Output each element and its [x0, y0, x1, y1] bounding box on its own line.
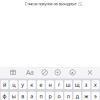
button[interactable]: р: [46, 92, 54, 100]
button[interactable]: л: [64, 92, 72, 100]
button[interactable]: о: [55, 92, 63, 100]
button[interactable]: н: [46, 80, 54, 89]
staticText: з: [85, 81, 88, 88]
staticText: д: [76, 93, 79, 100]
staticText: ц: [12, 81, 15, 88]
staticText: е: [39, 81, 42, 88]
button[interactable]: д: [73, 92, 81, 100]
button[interactable]: ц: [10, 80, 17, 89]
staticText: г: [58, 81, 60, 88]
staticText: Aa: [26, 68, 34, 77]
staticText: э: [94, 93, 97, 100]
button[interactable]: ф: [1, 92, 8, 100]
button[interactable]: Hide keyboard: [86, 68, 94, 77]
button[interactable]: й: [1, 80, 8, 89]
staticText: к: [30, 81, 33, 88]
button[interactable]: в: [19, 92, 27, 100]
staticText: а: [30, 93, 33, 100]
staticText: ж: [84, 93, 88, 100]
staticText: х: [94, 81, 97, 88]
staticText: в: [21, 93, 24, 100]
button[interactable]: у: [19, 80, 27, 89]
button[interactable]: Text format: [25, 68, 34, 77]
staticText: й: [3, 81, 6, 88]
staticText: Список покупок на выходные 🛒: [24, 1, 82, 6]
button[interactable]: ш: [64, 80, 72, 89]
button[interactable]: щ: [73, 80, 81, 89]
staticText: р: [48, 93, 51, 100]
button[interactable]: ы: [10, 92, 17, 100]
staticText: н: [48, 81, 51, 88]
button[interactable]: Markup: [41, 68, 49, 77]
button[interactable]: з: [82, 80, 90, 89]
button[interactable]: Insert table: [9, 68, 17, 77]
staticText: ш: [66, 81, 71, 88]
button[interactable]: Checklist: [54, 68, 62, 77]
staticText: ф: [3, 93, 7, 100]
button[interactable]: п: [37, 92, 45, 100]
button[interactable]: г: [55, 80, 63, 89]
staticText: у: [21, 81, 24, 88]
button[interactable]: Camera: [69, 68, 77, 77]
button[interactable]: х: [92, 80, 99, 89]
button[interactable]: э: [92, 92, 99, 100]
staticText: ы: [12, 93, 16, 100]
button[interactable]: ж: [82, 92, 90, 100]
staticText: п: [39, 93, 42, 100]
button[interactable]: а: [28, 92, 36, 100]
button[interactable]: к: [28, 80, 36, 89]
staticText: о: [58, 93, 61, 100]
staticText: щ: [75, 81, 80, 88]
staticText: л: [67, 93, 70, 100]
button[interactable]: е: [37, 80, 45, 89]
